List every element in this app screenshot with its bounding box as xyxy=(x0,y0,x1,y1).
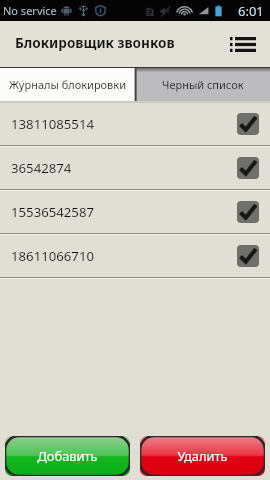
staticText: 36542874 xyxy=(11,159,72,177)
staticText: Добавить xyxy=(37,447,98,465)
button[interactable]: Menu xyxy=(222,21,270,68)
button[interactable]: Удалить xyxy=(140,436,265,476)
button[interactable]: Журналы блокировки xyxy=(0,68,135,101)
staticText: Черный список xyxy=(162,77,244,92)
button[interactable]: Selected xyxy=(237,113,259,135)
button[interactable]: 13811085514 xyxy=(0,103,270,145)
staticText: 13811085514 xyxy=(11,115,94,133)
staticText: Журналы блокировки xyxy=(9,77,126,92)
staticText: 18611066710 xyxy=(11,247,94,265)
button[interactable]: 36542874 xyxy=(0,147,270,189)
button[interactable]: Selected xyxy=(237,245,259,267)
staticText: No service xyxy=(3,3,57,18)
staticText: Удалить xyxy=(177,447,228,465)
button[interactable]: Черный список xyxy=(135,68,270,101)
button[interactable]: Selected xyxy=(237,157,259,179)
staticText: Блокировщик звонков xyxy=(15,33,175,52)
staticText: 15536542587 xyxy=(11,203,94,221)
button[interactable]: Selected xyxy=(237,201,259,223)
button[interactable]: 18611066710 xyxy=(0,235,270,277)
button[interactable]: 15536542587 xyxy=(0,191,270,233)
staticText: 6:01 xyxy=(238,2,264,20)
button[interactable]: Добавить xyxy=(5,436,130,476)
